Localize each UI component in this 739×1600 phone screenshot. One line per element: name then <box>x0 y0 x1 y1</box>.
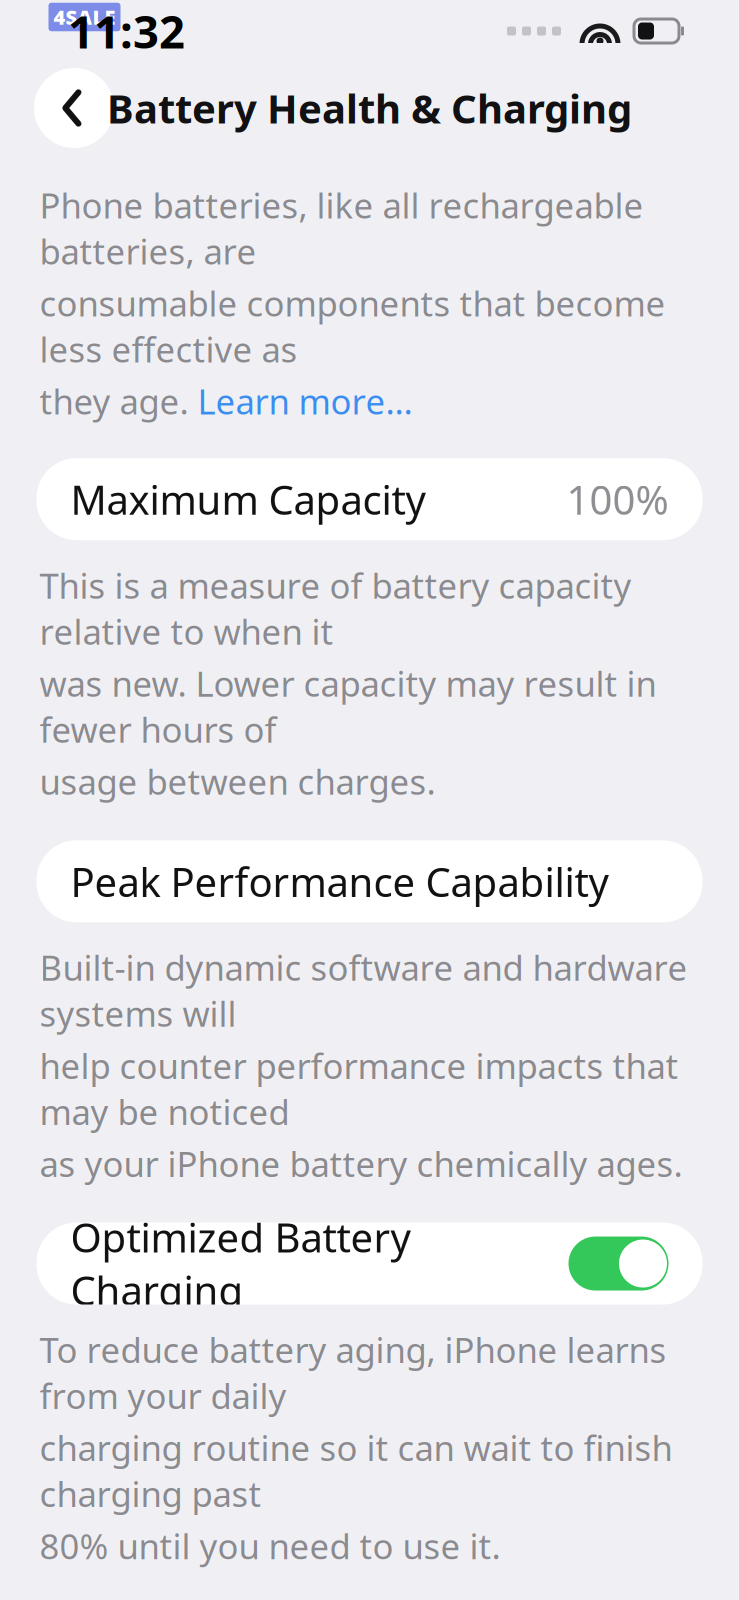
button[interactable]: Back <box>34 68 114 148</box>
staticText: usage between charges. <box>39 758 435 804</box>
staticText: 4SALE <box>53 4 115 30</box>
staticText: To reduce battery aging, iPhone learns f… <box>39 1326 666 1419</box>
staticText: Battery Health & Charging <box>107 81 632 134</box>
staticText: Phone batteries, like all rechargeable b… <box>39 182 643 274</box>
staticText: as your iPhone battery chemically ages. <box>39 1140 682 1186</box>
staticText: This is a measure of battery capacity re… <box>39 562 631 654</box>
staticText: Learn more... <box>188 378 412 424</box>
staticText: 80% until you need to use it. <box>39 1523 500 1569</box>
staticText: Maximum Capacity <box>70 473 425 526</box>
staticText: 100% <box>566 473 668 526</box>
staticText: they age. <box>39 378 188 424</box>
staticText: Optimized Battery Charging <box>70 1210 410 1317</box>
staticText: help counter performance impacts that ma… <box>39 1042 678 1134</box>
button[interactable]: Optimized Battery Charging, on <box>568 1236 668 1290</box>
staticText: 11:32 <box>68 1 185 61</box>
staticText: was new. Lower capacity may result in fe… <box>39 660 656 752</box>
staticText: Built-in dynamic software and hardware s… <box>39 944 687 1036</box>
staticText: charging routine so it can wait to finis… <box>39 1425 672 1517</box>
staticText: Peak Performance Capability <box>70 855 608 908</box>
staticText: consumable components that become less e… <box>39 280 665 372</box>
